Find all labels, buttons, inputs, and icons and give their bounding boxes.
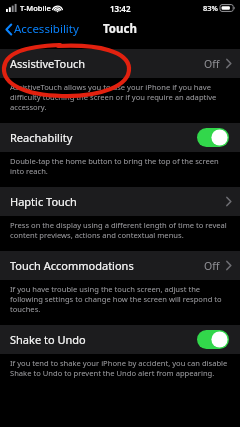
staticText: If you have trouble using the touch scre… (10, 284, 230, 314)
staticText: AssistiveTouch (10, 56, 86, 71)
staticText: Off (204, 57, 220, 71)
button[interactable]: Reachability toggle (197, 128, 229, 147)
button[interactable]: Reachability (0, 123, 240, 152)
staticText: 83% (203, 3, 218, 13)
staticText: If you tend to shake your iPhone by acci… (10, 358, 230, 378)
staticText: Double-tap the home button to bring the … (10, 156, 230, 176)
staticText: AssistiveTouch allows you to use your iP… (10, 82, 230, 112)
staticText: Reachability (10, 130, 73, 145)
button[interactable]: AssistiveTouch (0, 49, 240, 78)
staticText: Touch (103, 21, 137, 37)
staticText: 13:42 (110, 3, 131, 14)
button[interactable]: Touch Accommodations (0, 251, 240, 280)
staticText: Press on the display using a different l… (10, 220, 230, 240)
staticText: Accessibility (14, 21, 79, 37)
button[interactable]: Accessibility (0, 17, 85, 41)
button[interactable]: Shake to Undo (0, 325, 240, 354)
staticText: Haptic Touch (10, 194, 77, 209)
staticText: Off (204, 259, 220, 273)
staticText: Touch Accommodations (10, 258, 134, 273)
staticText: T-Mobile (20, 3, 51, 13)
button[interactable]: Shake to Undo toggle (197, 330, 229, 349)
button[interactable]: Haptic Touch (0, 187, 240, 216)
staticText: Shake to Undo (10, 332, 86, 347)
